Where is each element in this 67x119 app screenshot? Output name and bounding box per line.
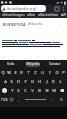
button[interactable]: Comma — [15, 95, 22, 104]
button[interactable]: C — [22, 86, 29, 95]
staticText: J — [46, 79, 48, 84]
staticText: K — [52, 79, 55, 84]
button[interactable]: Switch tabs — [54, 6, 60, 12]
staticText: ?123 — [1, 98, 8, 102]
button[interactable]: Backspace — [57, 86, 67, 95]
button[interactable]: K — [50, 77, 57, 86]
staticText: . — [51, 97, 52, 102]
button[interactable]: O — [53, 68, 60, 77]
button[interactable]: Wikipedia — [22, 60, 44, 68]
button[interactable]: Shift — [0, 86, 9, 95]
button[interactable]: U — [39, 68, 46, 77]
staticText: Y — [11, 88, 14, 93]
button[interactable]: T — [25, 68, 32, 77]
button[interactable]: Einstellungen — [1, 13, 26, 17]
button[interactable]: H — [36, 77, 43, 86]
button[interactable]: More options — [60, 6, 66, 12]
staticText: P — [62, 70, 65, 75]
button[interactable]: P — [60, 68, 67, 77]
staticText: Wikipedia — [63, 13, 66, 17]
staticText: Z — [34, 70, 37, 75]
button[interactable]: Main menu — [1, 21, 7, 27]
button[interactable]: E — [12, 68, 18, 77]
staticText: Wikipedia durchsuchen — [28, 22, 60, 26]
staticText: H — [38, 79, 41, 84]
staticText: T — [27, 70, 30, 75]
button[interactable]: B — [36, 86, 43, 95]
staticText: L — [59, 79, 62, 84]
button[interactable]: J — [43, 77, 50, 86]
staticText: A — [4, 79, 7, 84]
button[interactable]: de.wikipedia.org/wiki/... — [1, 5, 46, 12]
staticText: Nachrichten — [40, 13, 59, 17]
button[interactable]: Nachrichten — [37, 13, 60, 17]
staticText: W — [7, 70, 11, 75]
staticText: O — [55, 70, 59, 75]
staticText: Wikipedia — [26, 62, 40, 66]
button[interactable]: F — [22, 77, 29, 86]
staticText: V — [31, 88, 34, 93]
staticText: Neu — [29, 13, 36, 17]
button[interactable]: L — [57, 77, 64, 86]
button[interactable]: Wikipedia durchsuchen — [27, 21, 61, 27]
button[interactable]: Space — [22, 95, 48, 104]
button[interactable]: I — [46, 68, 53, 77]
button[interactable]: V — [29, 86, 36, 95]
staticText: Hallo — [7, 62, 15, 66]
button[interactable]: Wikipedia — [60, 13, 67, 17]
staticText: Einstellungen — [4, 13, 25, 17]
staticText: X — [17, 88, 20, 93]
button[interactable]: N — [43, 86, 50, 95]
staticText: D — [17, 79, 20, 84]
staticText: de.wikipedia.org/wiki/... — [7, 6, 45, 11]
button[interactable]: A — [2, 77, 8, 86]
staticText: I — [49, 70, 51, 75]
button[interactable]: Tastatur — [44, 60, 66, 68]
button[interactable]: R — [18, 68, 25, 77]
button[interactable]: Y — [9, 86, 15, 95]
staticText: Tastatur — [49, 62, 61, 66]
staticText: E — [14, 70, 17, 75]
button[interactable]: Period — [48, 95, 55, 104]
staticText: C — [24, 88, 27, 93]
button[interactable]: Q — [0, 68, 6, 77]
button[interactable]: Search — [55, 95, 67, 104]
button[interactable]: W — [6, 68, 12, 77]
staticText: S — [10, 79, 13, 84]
button[interactable]: G — [29, 77, 36, 86]
staticText: Q — [1, 70, 5, 75]
staticText: N — [45, 88, 49, 93]
staticText: U — [41, 70, 44, 75]
staticText: F — [24, 79, 27, 84]
button[interactable]: D — [15, 77, 22, 86]
button[interactable]: Neu — [26, 13, 37, 17]
staticText: B — [38, 88, 41, 93]
button[interactable]: M — [50, 86, 57, 95]
button[interactable]: Emoji — [8, 95, 15, 104]
staticText: WIKIPEDIA — [7, 22, 26, 27]
button[interactable]: ?123 — [0, 95, 8, 104]
staticText: M — [52, 88, 56, 93]
button[interactable]: Hallo — [0, 60, 22, 68]
button[interactable]: Z — [32, 68, 39, 77]
staticText: , — [18, 97, 19, 102]
staticText: R — [20, 70, 23, 75]
staticText: G — [31, 79, 34, 84]
button[interactable]: X — [15, 86, 22, 95]
button[interactable]: S — [8, 77, 15, 86]
